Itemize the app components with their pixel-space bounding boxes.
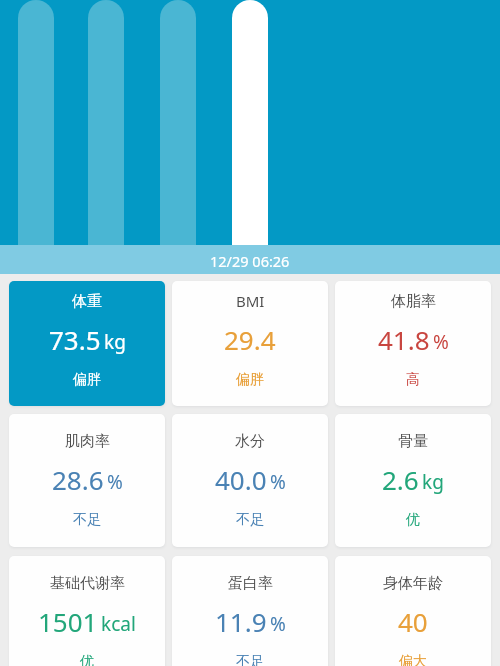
staticText: kcal [101,611,136,637]
staticText: 1501 [38,604,98,639]
staticText: 28.6 [52,462,104,497]
staticText: 偏大 [399,653,427,666]
button[interactable]: BMI [172,281,328,406]
staticText: 12/29 06:26 [210,251,290,271]
button[interactable]: 蛋白率 [172,556,328,666]
staticText: 高 [406,371,420,389]
button[interactable]: 体重 [9,281,165,406]
button[interactable]: 体脂率 [335,281,491,406]
button[interactable]: 身体年龄 [335,556,491,666]
staticText: 11.9 [215,604,267,639]
staticText: kg [104,329,126,355]
staticText: BMI [236,291,265,311]
staticText: 73.5 [49,322,101,357]
staticText: % [107,469,123,495]
staticText: 基础代谢率 [50,574,125,593]
button[interactable]: 肌肉率 [9,414,165,547]
other: Weight history chart [0,0,500,245]
staticText: 40.0 [215,462,267,497]
staticText: 体脂率 [391,292,436,311]
staticText: 不足 [73,511,101,529]
staticText: 不足 [236,653,264,666]
button[interactable]: 水分 [172,414,328,547]
staticText: 优 [80,653,94,666]
staticText: 40 [398,604,428,639]
staticText: kg [422,469,444,495]
staticText: 蛋白率 [228,574,273,593]
button[interactable]: 骨量 [335,414,491,547]
staticText: 肌肉率 [65,432,110,451]
staticText: 41.8 [378,322,430,357]
staticText: 身体年龄 [383,574,443,593]
staticText: % [270,611,286,637]
staticText: % [433,329,449,355]
button[interactable]: 基础代谢率 [9,556,165,666]
button[interactable]: 12/29 06:26 [0,245,500,274]
staticText: 优 [406,511,420,529]
staticText: 水分 [235,432,265,451]
staticText: 体重 [72,292,102,311]
staticText: % [270,469,286,495]
staticText: 偏胖 [236,371,264,389]
staticText: 29.4 [224,322,276,357]
staticText: 偏胖 [73,371,101,389]
staticText: 骨量 [398,432,428,451]
staticText: 不足 [236,511,264,529]
staticText: 2.6 [382,462,419,497]
